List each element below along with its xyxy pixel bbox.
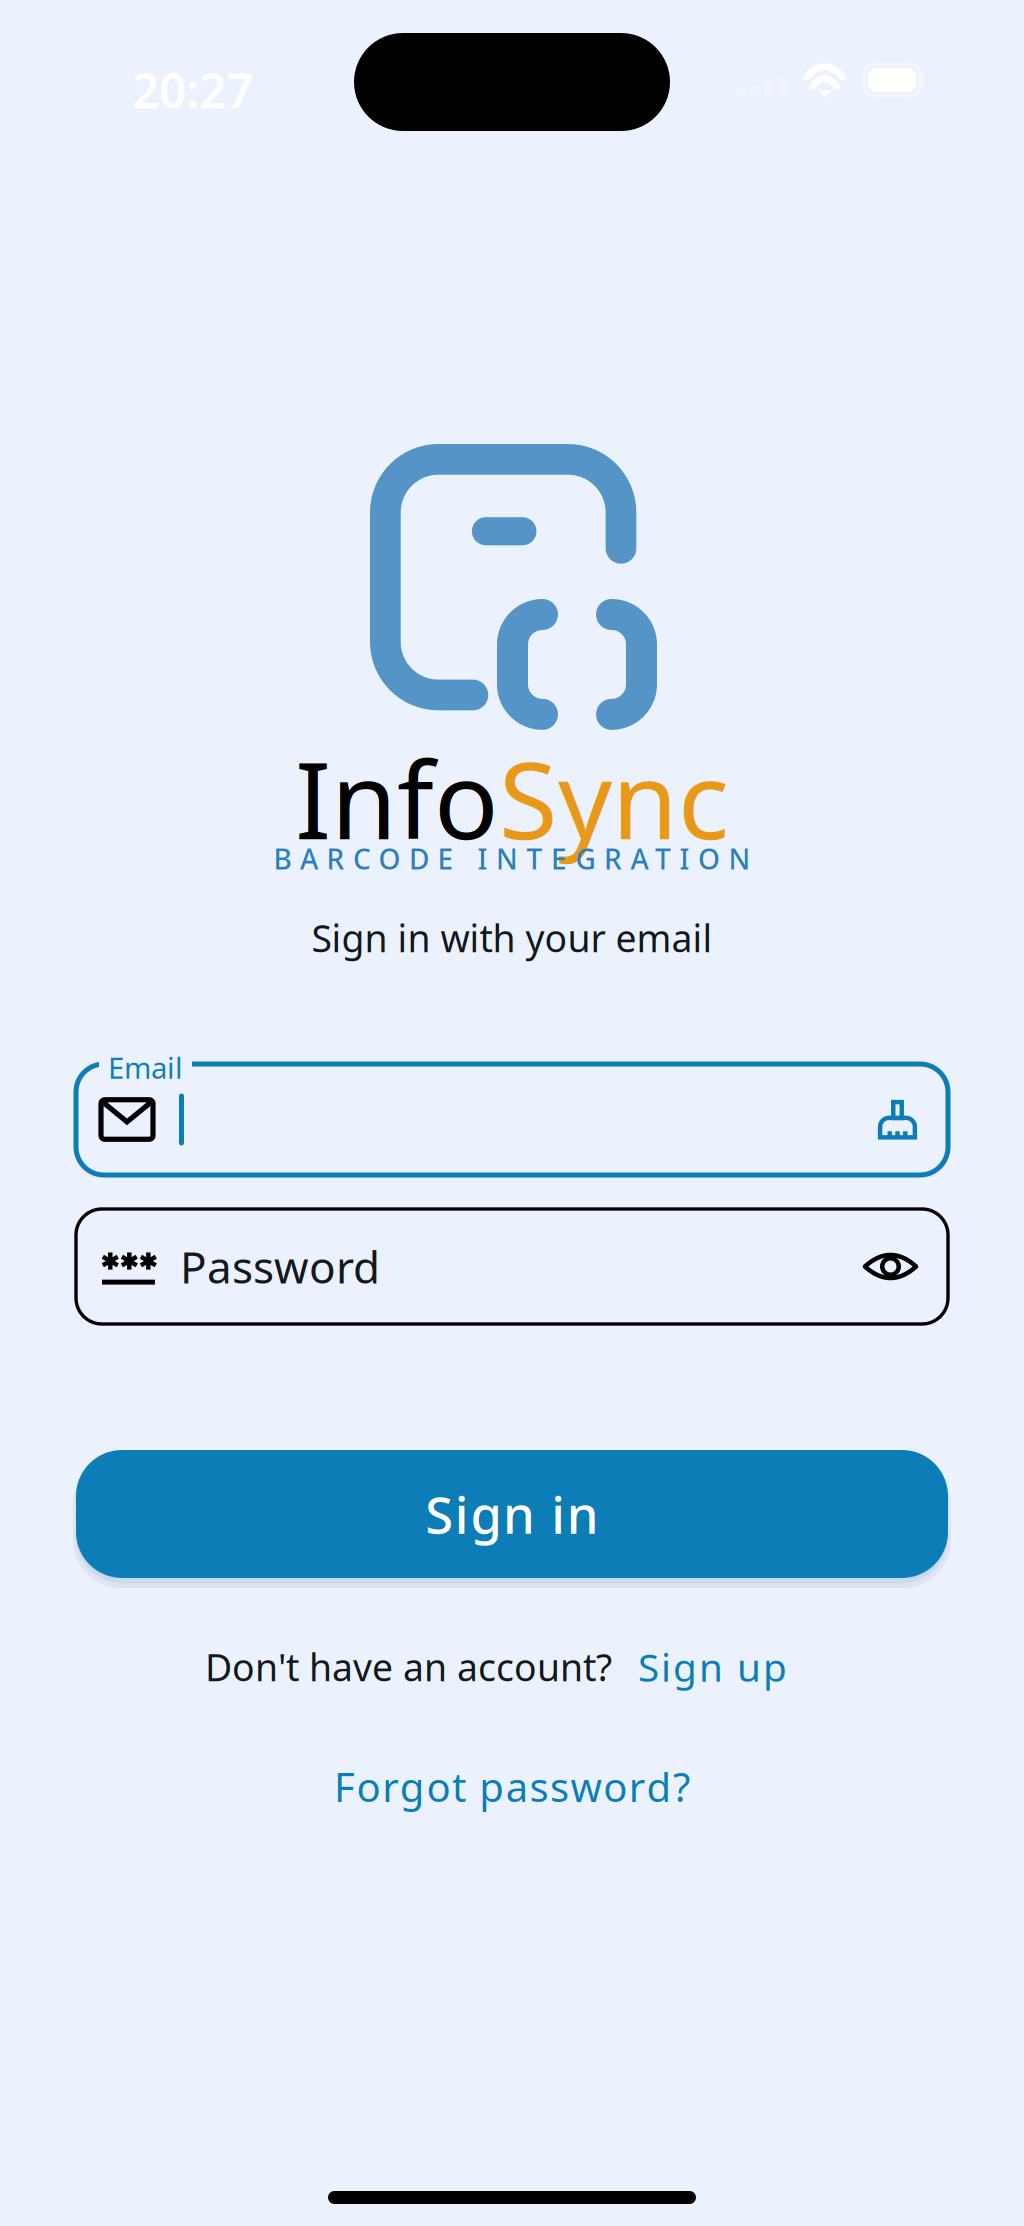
staticText: Sign in: [425, 1480, 599, 1548]
button[interactable]: Sign in: [76, 1450, 948, 1578]
staticText: 20:27: [132, 58, 253, 122]
button[interactable]: S: [638, 1641, 787, 1692]
staticText: i: [661, 1641, 671, 1692]
button[interactable]: Forgot password?: [334, 1760, 690, 1813]
staticText: g: [673, 1641, 697, 1692]
button[interactable]: Clear email: [874, 1096, 921, 1143]
staticText: S: [638, 1641, 659, 1692]
staticText: n: [699, 1641, 723, 1692]
staticText: Password: [180, 1237, 380, 1296]
staticText: Info: [295, 727, 499, 869]
staticText: Don't have an account?: [205, 1642, 612, 1691]
staticText: BARCODE INTEGRATION: [273, 840, 750, 877]
staticText: u: [737, 1641, 761, 1692]
staticText: Forgot password?: [334, 1760, 690, 1813]
staticText: Email: [108, 1048, 183, 1087]
staticText: Sign in with your email: [311, 913, 712, 963]
staticText: Sync: [499, 727, 729, 869]
button[interactable]: Show password: [863, 1239, 918, 1294]
staticText: p: [763, 1641, 787, 1692]
